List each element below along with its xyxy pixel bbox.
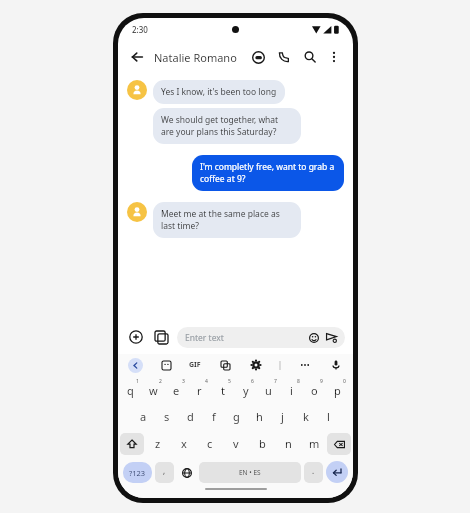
button[interactable]: ?123 [123,462,152,483]
button[interactable]: x [171,430,197,457]
button[interactable]: More [298,358,312,372]
button[interactable]: l [317,403,340,430]
button[interactable]: z [144,430,171,457]
button[interactable]: Natalie Romano [154,50,237,65]
button[interactable]: Translate [218,358,232,372]
staticText: GIF [189,360,201,370]
button[interactable]: h [248,403,271,430]
staticText: x [181,436,187,451]
staticText: 8 [297,378,300,385]
staticText: 2 [159,378,162,385]
staticText: u [265,383,272,398]
button[interactable]: d [179,403,202,430]
staticText: Yes I know, it's been too long [161,86,277,98]
staticText: We should get together, what are your pl… [161,114,293,138]
button[interactable]: y [236,376,259,403]
staticText: 6 [251,378,254,385]
button[interactable]: f [202,403,225,430]
staticText: h [256,409,263,424]
button[interactable]: Yes I know, it's been too long [153,80,285,104]
button[interactable]: Shift [120,433,144,455]
staticText: v [233,436,239,451]
staticText: 7 [274,378,277,385]
staticText: 9 [320,378,323,385]
button[interactable]: Add [126,327,146,347]
button[interactable]: . [304,462,323,483]
button[interactable]: n [275,430,301,457]
staticText: f [212,409,216,424]
button[interactable]: q [120,376,144,403]
staticText: y [243,383,249,398]
staticText: 4 [205,378,208,385]
button[interactable]: Enter text [177,327,345,348]
button[interactable]: Video call [247,46,269,68]
button[interactable]: v [223,430,249,457]
button[interactable]: Meet me at the same place as last time? [153,202,301,238]
button[interactable]: Voice input [329,358,343,372]
staticText: o [311,383,318,398]
staticText: i [290,383,293,398]
button[interactable]: e [167,376,190,403]
staticText: n [285,436,292,451]
button[interactable]: i [282,376,305,403]
button[interactable]: Settings [249,358,263,372]
button[interactable]: Search [299,46,321,68]
button[interactable]: More options [323,46,345,68]
button[interactable]: Backspace [327,433,351,455]
staticText: e [173,383,180,398]
staticText: d [187,409,194,424]
button[interactable]: t [213,376,236,403]
staticText: r [197,383,202,398]
button[interactable]: , [155,462,174,483]
staticText: c [207,436,213,451]
button[interactable]: GIF [189,360,201,370]
staticText: Enter text [185,332,224,344]
button[interactable]: g [225,403,248,430]
staticText: 2:30 [132,24,148,35]
button[interactable]: Back [126,46,148,68]
staticText: I'm completly free, want to grab a coffe… [200,161,336,185]
button[interactable]: c [197,430,223,457]
button[interactable]: Call [273,46,295,68]
staticText: Meet me at the same place as last time? [161,208,293,232]
button[interactable]: w [144,376,167,403]
staticText: z [155,436,161,451]
staticText: 3 [182,378,185,385]
staticText: a [140,409,147,424]
staticText: EN • ES [239,468,261,477]
staticText: m [309,436,320,451]
button[interactable]: k [294,403,317,430]
staticText: p [334,383,341,398]
button[interactable]: a [131,403,155,430]
button[interactable]: j [271,403,294,430]
other: Emoji [309,333,319,343]
button[interactable]: Stickers [159,358,173,372]
button[interactable]: o [305,376,328,403]
staticText: k [303,409,309,424]
staticText: 1 [136,378,139,385]
button[interactable]: p [328,376,351,403]
staticText: q [127,383,134,398]
button[interactable]: Collapse toolbar [128,358,143,373]
staticText: . [312,465,315,476]
button[interactable]: b [249,430,275,457]
staticText: w [149,383,158,398]
button[interactable]: Enter [326,461,348,483]
staticText: j [281,409,284,424]
staticText: g [233,409,240,424]
staticText: l [327,409,330,424]
button[interactable]: Gallery [151,327,171,347]
button[interactable]: r [190,376,213,403]
button[interactable]: We should get together, what are your pl… [153,108,301,144]
button[interactable]: u [259,376,282,403]
button[interactable]: EN • ES [199,462,301,483]
staticText: 0 [343,378,346,385]
button[interactable]: I'm completly free, want to grab a coffe… [192,155,344,191]
button[interactable]: m [301,430,327,457]
staticText: , [163,465,166,476]
staticText: 5 [228,378,231,385]
other: Send [326,332,337,343]
button[interactable]: Change language [177,462,196,483]
button[interactable]: s [155,403,179,430]
staticText: b [259,436,266,451]
